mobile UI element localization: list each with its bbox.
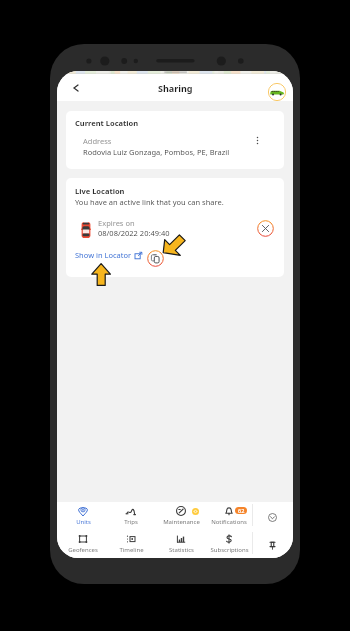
- button[interactable]: Show in Locator: [75, 250, 142, 260]
- button[interactable]: Back: [66, 78, 86, 98]
- button[interactable]: Pin menu: [264, 537, 281, 554]
- staticText: Subscriptions: [210, 546, 249, 554]
- button[interactable]: Copy link: [146, 249, 164, 267]
- button[interactable]: Subscriptions: [206, 534, 252, 554]
- button[interactable]: 62: [206, 506, 252, 526]
- button[interactable]: Collapse menu: [264, 509, 281, 526]
- staticText: Notifications: [211, 518, 247, 526]
- staticText: Timeline: [119, 546, 144, 554]
- button[interactable]: Vehicle: [267, 82, 286, 101]
- button[interactable]: Trips: [108, 506, 154, 526]
- staticText: 62: [238, 507, 245, 514]
- staticText: Rodovia Luiz Gonzaga, Pombos, PE, Brazil: [83, 147, 230, 157]
- button[interactable]: Cancel link: [256, 219, 274, 237]
- staticText: Units: [76, 518, 91, 526]
- button[interactable]: More options: [249, 132, 265, 148]
- staticText: Sharing: [158, 82, 193, 94]
- staticText: Address: [83, 136, 112, 146]
- staticText: Expires on: [98, 218, 135, 228]
- button[interactable]: Geofences: [60, 534, 106, 554]
- button[interactable]: Timeline: [108, 534, 154, 554]
- button[interactable]: Maintenance: [158, 506, 204, 526]
- staticText: 08/08/2022 20:49:40: [98, 228, 170, 238]
- button[interactable]: Statistics: [158, 534, 204, 554]
- staticText: Maintenance: [163, 518, 200, 526]
- staticText: Live Location: [75, 186, 125, 196]
- button[interactable]: Units: [60, 506, 106, 526]
- staticText: Statistics: [169, 546, 194, 554]
- staticText: Geofences: [68, 546, 98, 554]
- staticText: Show in Locator: [75, 250, 132, 260]
- staticText: Current Location: [75, 118, 139, 128]
- staticText: You have an active link that you can sha…: [75, 197, 224, 207]
- staticText: Trips: [124, 518, 138, 526]
